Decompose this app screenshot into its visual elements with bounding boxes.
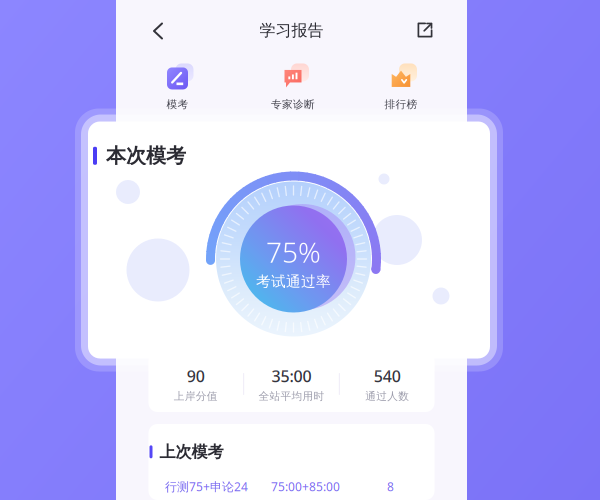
staticText: 模考 [166, 98, 188, 111]
button[interactable]: 模考 [127, 65, 227, 111]
staticText: 90 [187, 365, 205, 386]
staticText: 本次模考 [106, 143, 186, 168]
staticText: 上次模考 [159, 442, 223, 462]
staticText: 通过人数 [365, 390, 409, 403]
button[interactable]: 专家诊断 [243, 65, 343, 111]
staticText: 专家诊断 [271, 98, 315, 111]
staticText: 8 [387, 479, 394, 495]
staticText: 上岸分值 [174, 390, 218, 403]
staticText: 35:00 [271, 365, 311, 386]
button[interactable]: 排行榜 [351, 65, 451, 111]
staticText: 考试通过率 [256, 273, 331, 291]
button[interactable]: Share [409, 8, 449, 50]
staticText: 75% [266, 233, 321, 271]
staticText: 全站平均用时 [258, 390, 324, 403]
button[interactable]: Back [134, 8, 174, 50]
staticText: 75:00+85:00 [271, 479, 340, 495]
staticText: 排行榜 [384, 98, 417, 111]
staticText: 学习报告 [259, 21, 323, 40]
staticText: 540 [374, 365, 401, 386]
staticText: 行测75+申论24 [165, 479, 248, 495]
